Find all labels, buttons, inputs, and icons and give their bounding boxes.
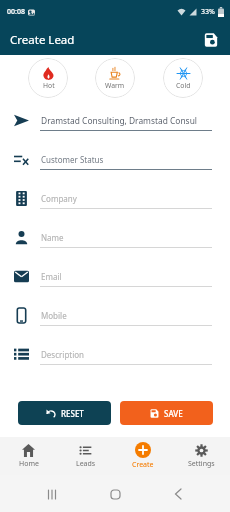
button[interactable]: Description [0,335,230,374]
button[interactable] [201,30,221,50]
button[interactable]: RESET [18,401,111,425]
button[interactable] [42,484,62,504]
staticText: Create Lead [10,32,75,48]
button[interactable]: Hot [28,58,68,98]
button[interactable]: Mobile [0,296,230,335]
button[interactable]: Warm [95,58,135,98]
staticText: RESET [61,408,84,419]
staticText: Settings [188,459,215,469]
staticText: Name [41,232,213,243]
staticText: 33% [201,7,215,17]
button[interactable]: Create [114,437,172,475]
staticText: Mobile [41,310,213,321]
button[interactable]: SAVE [120,401,213,425]
staticText: Customer Status [41,154,213,165]
button[interactable]: Home [0,437,57,475]
staticText: Description [41,349,213,360]
button[interactable]: Company [0,179,230,218]
button[interactable]: Email [0,257,230,296]
button[interactable]: Customer Status [0,140,230,179]
button[interactable]: Name [0,218,230,257]
button[interactable]: Dramstad Consulting, Dramstad Consul [0,101,230,140]
staticText: Leads [76,459,96,469]
staticText: Hot [43,81,55,90]
staticText: 00:08 [7,7,25,17]
button[interactable]: Cold [163,58,203,98]
staticText: Company [41,193,213,204]
staticText: Create [132,460,154,470]
staticText: Warm [105,81,125,90]
staticText: Home [19,459,39,469]
staticText: Cold [176,81,191,90]
button[interactable]: Leads [57,437,114,475]
staticText: SAVE [164,408,183,419]
button[interactable] [105,484,125,504]
staticText: Dramstad Consulting, Dramstad Consul [41,115,213,126]
staticText: Email [41,271,213,282]
button[interactable]: Settings [172,437,230,475]
button[interactable] [168,484,188,504]
